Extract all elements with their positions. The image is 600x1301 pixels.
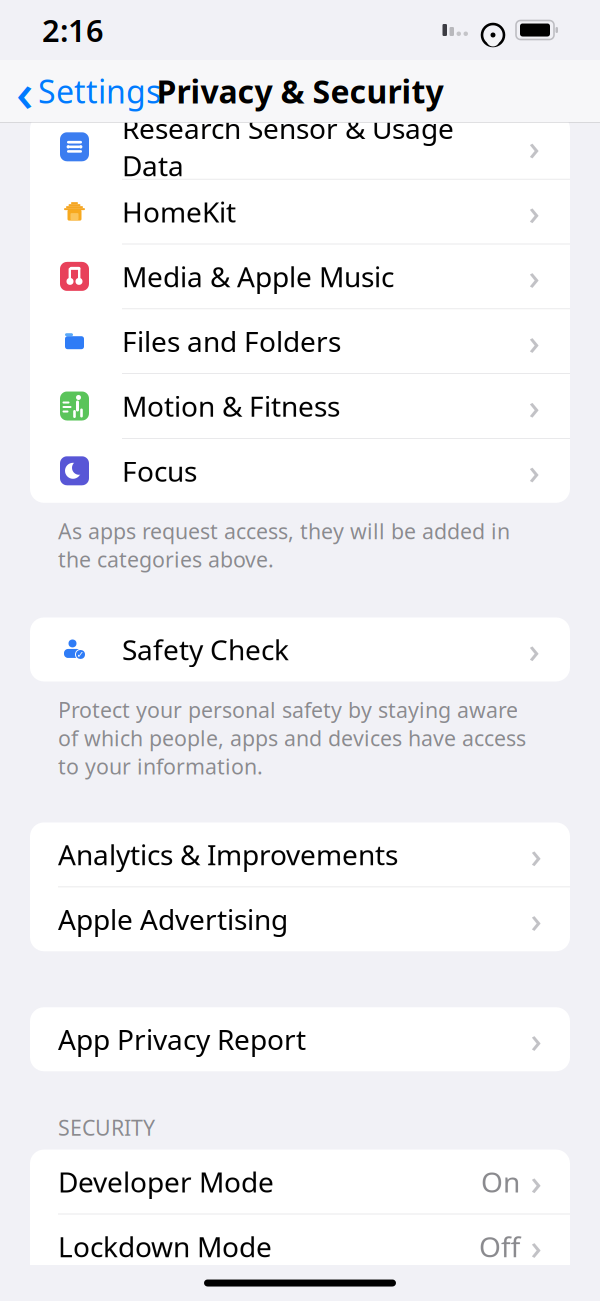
- staticText: HomeKit: [122, 193, 236, 230]
- staticText: App Privacy Report: [58, 1021, 306, 1058]
- button[interactable]: Apple Advertising: [30, 887, 570, 951]
- staticText: Protect your personal safety by staying …: [58, 695, 526, 780]
- button[interactable]: Motion & Fitness: [30, 374, 570, 438]
- staticText: Off: [479, 1228, 520, 1265]
- staticText: ›: [530, 1223, 541, 1269]
- staticText: ›: [528, 253, 539, 299]
- staticText: ›: [528, 318, 539, 364]
- staticText: Research Sensor & Usage Data: [122, 110, 454, 184]
- staticText: SECURITY: [58, 1113, 155, 1142]
- button[interactable]: Files and Folders: [30, 309, 570, 373]
- staticText: As apps request access, they will be add…: [58, 517, 510, 573]
- staticText: Motion & Fitness: [122, 387, 340, 425]
- staticText: Settings: [38, 70, 161, 112]
- button[interactable]: Focus: [30, 439, 570, 503]
- staticText: ›: [530, 1159, 541, 1205]
- staticText: Privacy & Security: [156, 70, 443, 112]
- button[interactable]: Research Sensor & Usage Data: [30, 115, 570, 179]
- staticText: ›: [528, 124, 539, 170]
- staticText: ›: [528, 626, 539, 672]
- staticText: Lockdown Mode: [58, 1228, 272, 1265]
- staticText: Apple Advertising: [58, 901, 288, 938]
- staticText: ‹: [16, 56, 33, 126]
- staticText: ✓: [76, 649, 84, 660]
- button[interactable]: Lockdown Mode: [30, 1214, 570, 1278]
- staticText: Focus: [122, 452, 197, 489]
- button[interactable]: ✓: [30, 617, 570, 681]
- staticText: ›: [528, 189, 539, 235]
- staticText: ›: [530, 896, 541, 942]
- staticText: ›: [528, 383, 539, 429]
- staticText: ›: [528, 448, 539, 494]
- button[interactable]: ‹: [0, 62, 171, 120]
- staticText: 2:16: [42, 10, 104, 50]
- staticText: Developer Mode: [58, 1163, 274, 1200]
- staticText: Analytics & Improvements: [58, 836, 398, 873]
- staticText: ›: [530, 831, 541, 877]
- button[interactable]: Media & Apple Music: [30, 244, 570, 308]
- button[interactable]: Developer Mode: [30, 1150, 570, 1214]
- button[interactable]: Analytics & Improvements: [30, 822, 570, 886]
- staticText: Files and Folders: [122, 323, 341, 360]
- staticText: ›: [530, 1016, 541, 1062]
- staticText: Safety Check: [122, 631, 289, 668]
- staticText: On: [481, 1163, 520, 1200]
- button[interactable]: HomeKit: [30, 180, 570, 244]
- staticText: Media & Apple Music: [122, 258, 394, 295]
- button[interactable]: App Privacy Report: [30, 1007, 570, 1071]
